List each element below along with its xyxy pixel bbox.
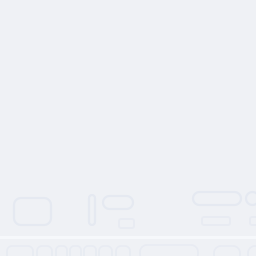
button[interactable]: More (246, 192, 256, 205)
button[interactable]: Attachment (14, 198, 51, 225)
button[interactable]: Action (193, 192, 241, 205)
button[interactable]: Tag (103, 196, 133, 209)
